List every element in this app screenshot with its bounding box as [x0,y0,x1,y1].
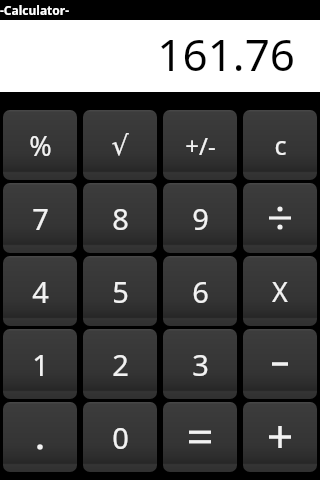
button[interactable]: Minus [243,329,317,399]
button[interactable]: 5 [83,256,157,326]
button[interactable]: 9 [163,183,237,253]
staticText: √ [111,130,129,161]
button[interactable]: 6 [163,256,237,326]
button[interactable]: % [3,110,77,180]
button[interactable]: Divide [243,183,317,253]
button[interactable]: 2 [83,329,157,399]
button[interactable]: 3 [163,329,237,399]
button[interactable]: X [243,256,317,326]
staticText: % [29,127,52,164]
staticText: 5 [112,272,129,311]
staticText: 161.76 [157,24,295,84]
button[interactable]: 7 [3,183,77,253]
staticText: X [272,273,288,310]
staticText: 1 [32,345,49,384]
staticText: 0 [112,418,129,457]
button[interactable]: Decimal point [3,402,77,472]
button[interactable]: √ [83,110,157,180]
staticText: +/- [185,129,216,162]
staticText: 4 [32,272,49,311]
button[interactable]: 1 [3,329,77,399]
staticText: 3 [192,345,209,384]
staticText: 2 [112,345,129,384]
button[interactable]: Plus [243,402,317,472]
staticText: -Calculator- [0,2,69,18]
staticText: 9 [192,199,209,238]
staticText: 8 [112,199,129,238]
button[interactable]: Equals [163,402,237,472]
button[interactable]: 0 [83,402,157,472]
staticText: 6 [192,272,209,311]
staticText: c [274,128,287,162]
button[interactable]: c [243,110,317,180]
staticText: 7 [32,199,49,238]
button[interactable]: +/- [163,110,237,180]
button[interactable]: 4 [3,256,77,326]
button[interactable]: 8 [83,183,157,253]
